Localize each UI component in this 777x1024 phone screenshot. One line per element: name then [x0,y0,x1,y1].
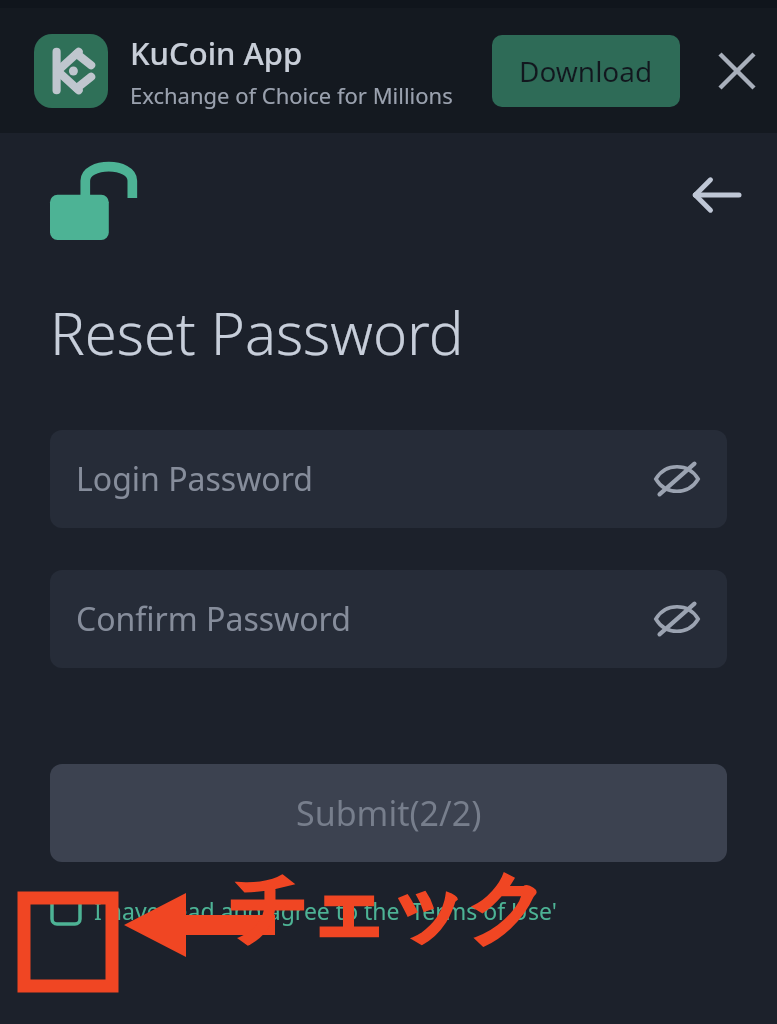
staticText: チェック [228,860,548,958]
button[interactable]: KuCoin logo [34,34,108,108]
staticText: I have read and agree to the 'Terms of U… [94,895,557,926]
staticText: Login Password [76,457,313,501]
staticText: Exchange of Choice for Millions [130,80,453,110]
staticText: Reset Password [50,293,464,372]
button[interactable]: Download [492,35,680,107]
staticText: KuCoin App [130,32,303,74]
button[interactable]: Confirm Password [50,570,727,668]
staticText: Confirm Password [76,597,351,641]
staticText: Download [519,52,653,90]
button[interactable]: Close banner [705,39,769,103]
button[interactable]: Show password [647,449,707,509]
button[interactable]: Login Password [50,430,727,528]
button[interactable]: I have read and agree to the 'Terms of U… [50,894,557,926]
staticText: Submit(2/2) [296,790,482,836]
button[interactable]: Show password [647,589,707,649]
button[interactable]: Submit(2/2) [50,764,727,862]
button[interactable]: Back [683,162,749,228]
